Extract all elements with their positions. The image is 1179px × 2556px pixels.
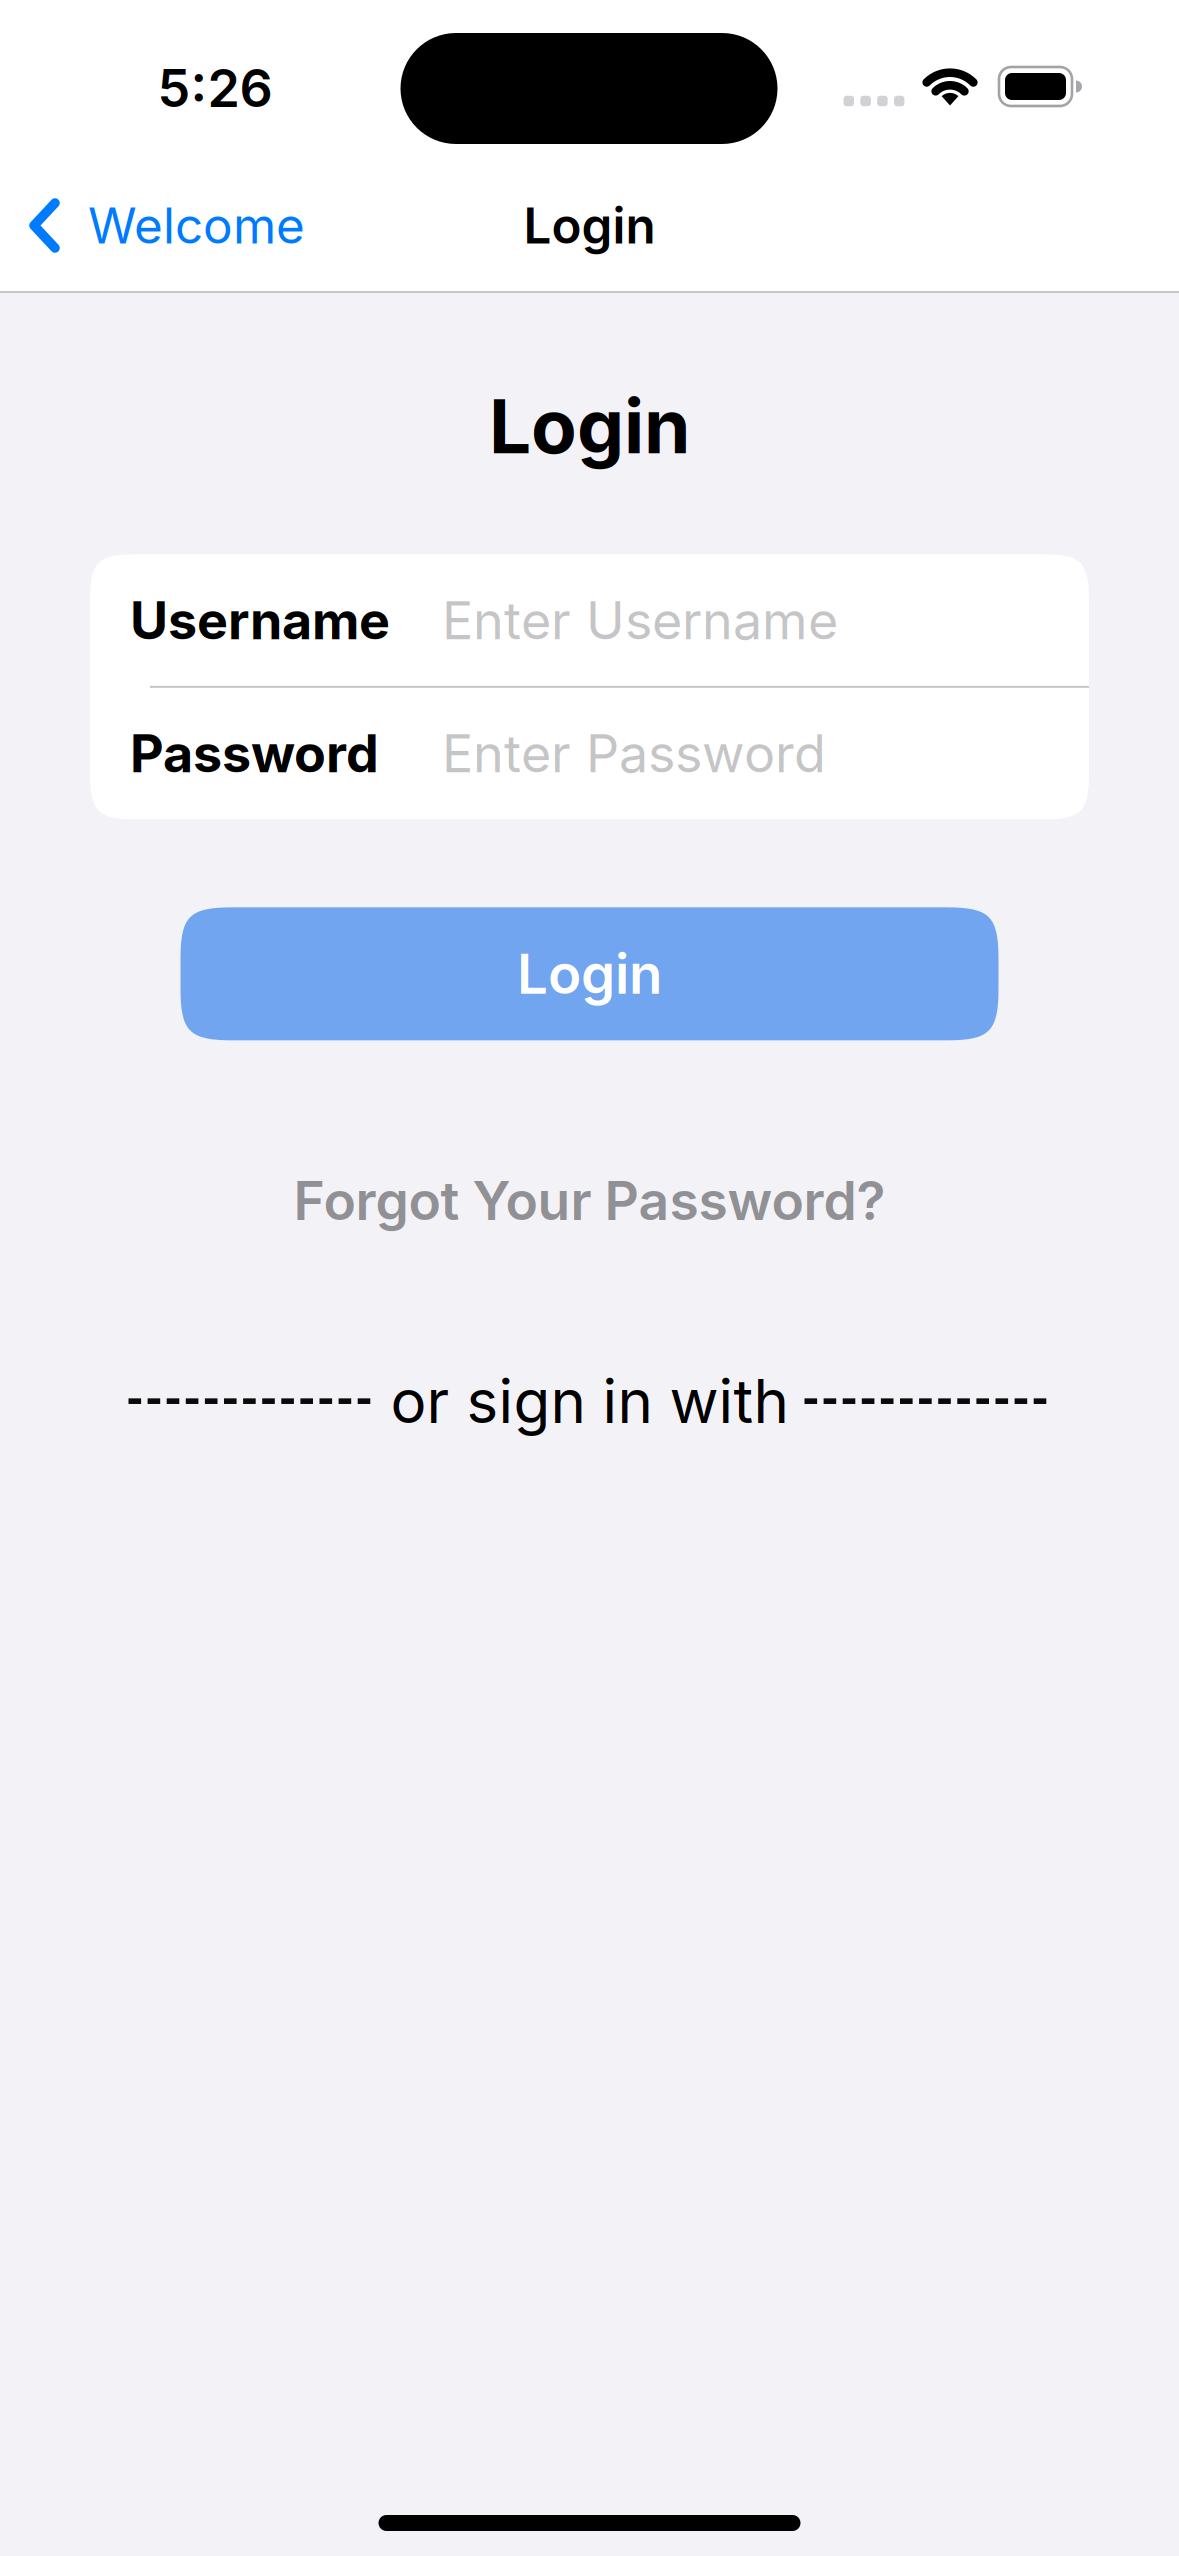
button[interactable]: Enter Password <box>90 688 1089 819</box>
button[interactable]: Forgot Your Password? <box>293 1168 885 1233</box>
button[interactable]: Enter Username <box>90 555 1089 686</box>
staticText: or sign in with <box>390 1365 788 1437</box>
staticText: Password <box>130 722 379 785</box>
staticText: Username <box>130 589 390 652</box>
staticText: Login <box>489 381 690 471</box>
button[interactable]: Login <box>180 907 998 1040</box>
staticText: Enter Username <box>442 589 838 652</box>
staticText: Enter Password <box>442 722 826 785</box>
staticText: 5:26 <box>157 56 272 119</box>
staticText: Login <box>523 196 655 255</box>
staticText: Welcome <box>88 196 305 255</box>
staticText: Login <box>517 941 662 1007</box>
staticText: Forgot Your Password? <box>293 1168 885 1233</box>
button[interactable]: Welcome <box>28 196 305 255</box>
